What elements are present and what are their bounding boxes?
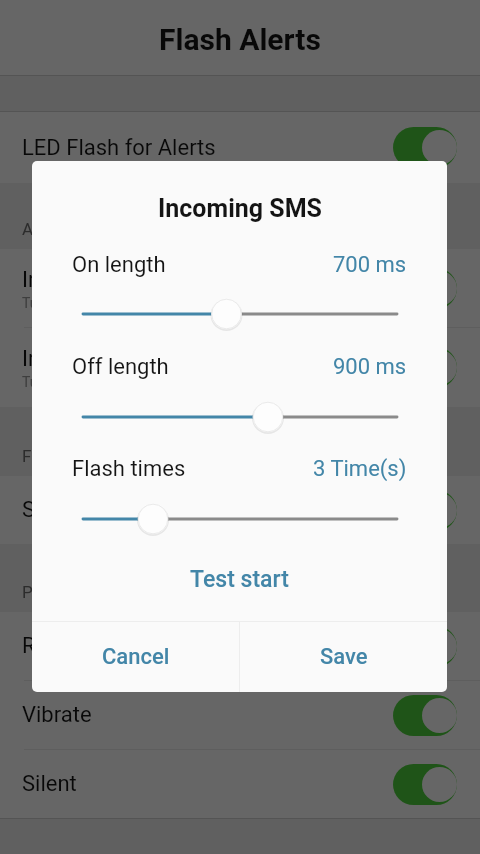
button[interactable] — [67, 501, 413, 537]
staticText: Apps — [22, 219, 61, 239]
staticText: On length — [72, 252, 166, 278]
button[interactable]: Test start — [32, 561, 447, 597]
staticText: Flash times — [72, 456, 186, 482]
button[interactable] — [67, 296, 413, 332]
staticText: Vibrate — [22, 702, 393, 728]
staticText: Flash Alerts — [159, 22, 321, 57]
button[interactable] — [67, 399, 413, 435]
staticText: LED Flash for Alerts — [22, 135, 393, 161]
button[interactable]: Vibrate — [0, 681, 480, 749]
staticText: Cancel — [102, 644, 170, 670]
staticText: Profile — [22, 582, 71, 602]
button[interactable]: Save — [240, 622, 447, 692]
staticText: Turn on LED flash for incoming SMS — [22, 374, 246, 390]
staticText: Incoming SMS — [158, 194, 322, 223]
staticText: Flash mode — [22, 446, 111, 466]
button[interactable]: Cancel — [32, 622, 239, 692]
button[interactable]: Incoming calls — [0, 249, 480, 328]
staticText: Test start — [190, 566, 289, 593]
button[interactable]: Ringer — [0, 612, 480, 680]
button[interactable]: Incoming SMS — [0, 328, 480, 407]
staticText: Silent — [22, 771, 393, 797]
staticText: Turn on LED flash for incoming calls — [22, 295, 246, 311]
staticText: Ringer — [22, 633, 393, 659]
button[interactable]: Screen flash — [0, 476, 480, 544]
staticText: Save — [320, 644, 368, 670]
staticText: Screen flash — [22, 497, 393, 523]
button[interactable]: Silent — [0, 750, 480, 818]
staticText: Off length — [72, 354, 169, 380]
staticText: Incoming calls — [22, 267, 165, 293]
staticText: Incoming SMS — [22, 346, 165, 372]
staticText: 3 Time(s) — [313, 456, 407, 482]
staticText: 700 ms — [333, 252, 407, 278]
staticText: 900 ms — [333, 354, 407, 380]
button[interactable]: LED Flash for Alerts — [0, 112, 480, 183]
